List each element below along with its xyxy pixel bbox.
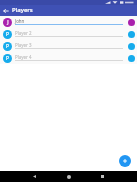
button[interactable]: J (0, 16, 137, 28)
staticText: P (6, 43, 9, 50)
button[interactable]: Home (63, 171, 74, 182)
staticText: J (7, 19, 9, 26)
button[interactable]: Choose colour (127, 30, 136, 39)
button[interactable]: P (0, 28, 137, 40)
staticText: Player 4 (15, 54, 32, 60)
button[interactable]: Recents (97, 171, 108, 182)
button[interactable]: P (0, 40, 137, 52)
button[interactable]: Choose colour (127, 18, 136, 27)
button[interactable]: Add player (119, 155, 131, 167)
staticText: John (15, 18, 25, 24)
button[interactable]: Back (29, 171, 40, 182)
staticText: P (6, 55, 9, 62)
button[interactable]: Navigate up (0, 5, 11, 16)
button[interactable]: P (0, 52, 137, 64)
staticText: Player 2 (15, 30, 32, 36)
staticText: Players (12, 6, 33, 14)
staticText: Player 3 (15, 42, 32, 48)
button[interactable]: Choose colour (127, 42, 136, 51)
button[interactable]: Choose colour (127, 54, 136, 63)
staticText: P (6, 31, 9, 38)
